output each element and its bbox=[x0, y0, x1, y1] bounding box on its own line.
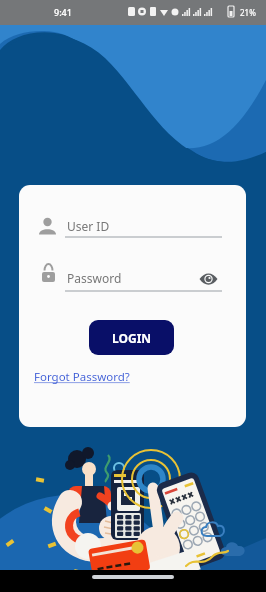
staticText: LOGIN bbox=[112, 330, 152, 346]
staticText: 9:41 bbox=[54, 6, 72, 18]
staticText: User ID bbox=[67, 218, 110, 234]
button[interactable]: LOGIN bbox=[89, 320, 174, 355]
button[interactable]: Forgot Password? bbox=[34, 369, 130, 385]
staticText: Password bbox=[67, 270, 122, 286]
staticText: Forgot Password? bbox=[34, 369, 130, 385]
staticText: 21% bbox=[240, 7, 256, 18]
